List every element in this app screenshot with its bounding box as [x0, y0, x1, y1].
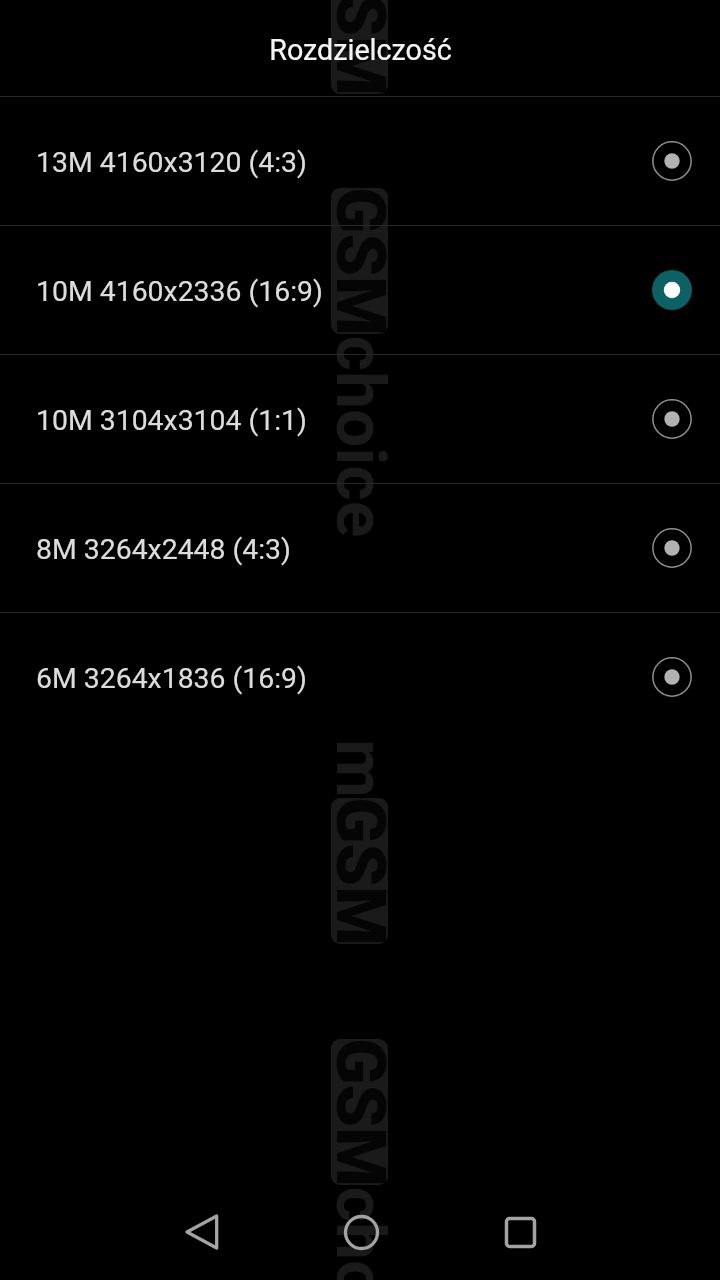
- staticText: 10M 4160x2336 (16:9): [36, 275, 323, 308]
- staticText: choice: [320, 335, 400, 538]
- staticText: m: [320, 739, 400, 798]
- staticText: 6M 3264x1836 (16:9): [36, 662, 307, 695]
- staticText: choice: [320, 1186, 400, 1280]
- staticText: 8M 3264x2448 (4:3): [36, 533, 291, 566]
- staticText: GSM: [320, 1038, 400, 1187]
- staticText: GSM: [320, 187, 400, 336]
- button[interactable]: 10M 4160x2336 (16:9): [0, 226, 720, 354]
- staticText: 13M 4160x3120 (4:3): [36, 146, 307, 179]
- button[interactable]: Home: [313, 1184, 409, 1280]
- button[interactable]: 6M 3264x1836 (16:9): [0, 613, 720, 741]
- staticText: 10M 3104x3104 (1:1): [36, 404, 307, 437]
- button[interactable]: Recents: [472, 1184, 568, 1280]
- button[interactable]: 10M 3104x3104 (1:1): [0, 355, 720, 483]
- button[interactable]: 8M 3264x2448 (4:3): [0, 484, 720, 612]
- staticText: GSM: [320, 0, 400, 96]
- staticText: Rozdzielczość: [269, 33, 452, 67]
- button[interactable]: 13M 4160x3120 (4:3): [0, 97, 720, 225]
- staticText: GSM: [320, 797, 400, 946]
- button[interactable]: Back: [155, 1184, 251, 1280]
